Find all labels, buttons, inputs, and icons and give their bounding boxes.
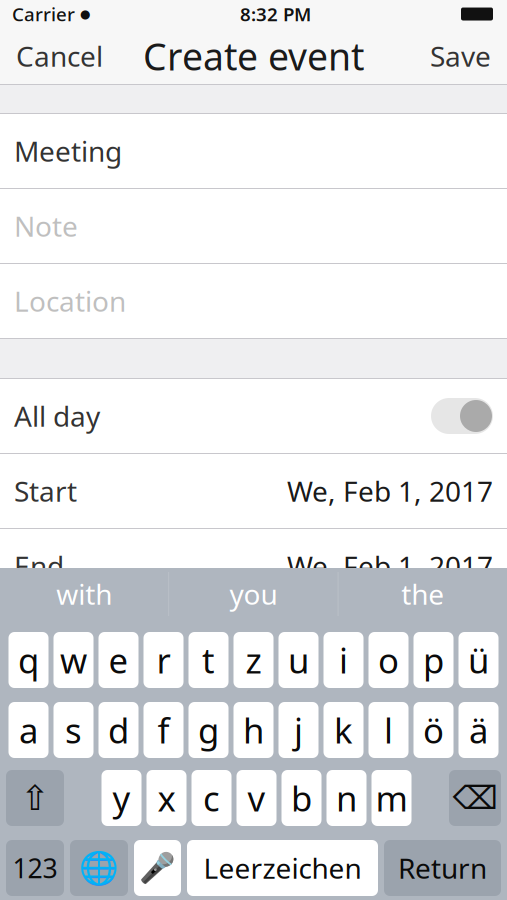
- staticText: f: [157, 707, 169, 753]
- button[interactable]: Next keyboard: [70, 840, 128, 896]
- button[interactable]: l: [368, 702, 408, 758]
- staticText: u: [288, 637, 309, 683]
- staticText: a: [19, 707, 38, 753]
- button[interactable]: with: [0, 568, 168, 620]
- button[interactable]: h: [233, 702, 273, 758]
- button[interactable]: Start: [0, 454, 507, 528]
- staticText: Return: [398, 849, 487, 887]
- staticText: o: [378, 637, 399, 683]
- staticText: 🌐: [79, 850, 119, 886]
- staticText: End: [14, 547, 64, 585]
- button[interactable]: 123: [6, 840, 64, 896]
- staticText: ●: [80, 7, 90, 21]
- button[interactable]: k: [323, 702, 363, 758]
- button[interactable]: e: [98, 632, 138, 688]
- button[interactable]: m: [371, 770, 411, 826]
- button[interactable]: All day: [0, 379, 507, 453]
- staticText: ü: [468, 637, 489, 683]
- staticText: v: [247, 775, 265, 821]
- staticText: ⌫: [452, 780, 497, 816]
- staticText: l: [384, 707, 393, 753]
- staticText: 🎤: [139, 851, 176, 885]
- button[interactable]: End: [0, 529, 507, 603]
- staticText: Meeting: [14, 132, 122, 170]
- staticText: j: [294, 707, 303, 753]
- staticText: with: [56, 575, 112, 613]
- staticText: ä: [469, 707, 488, 753]
- staticText: you: [229, 575, 277, 613]
- staticText: z: [245, 637, 261, 683]
- staticText: x: [157, 775, 175, 821]
- button[interactable]: a: [8, 702, 48, 758]
- staticText: s: [65, 707, 82, 753]
- staticText: We, Feb 1, 2017: [287, 472, 493, 510]
- staticText: p: [423, 637, 444, 683]
- button[interactable]: p: [413, 632, 453, 688]
- button[interactable]: Cancel: [0, 27, 119, 85]
- button[interactable]: Return: [384, 840, 501, 896]
- button[interactable]: the: [339, 568, 507, 620]
- button[interactable]: r: [143, 632, 183, 688]
- staticText: All day: [14, 397, 100, 435]
- button[interactable]: Meeting: [0, 114, 507, 188]
- button[interactable]: Shift: [6, 770, 64, 826]
- staticText: h: [243, 707, 264, 753]
- button[interactable]: n: [326, 770, 366, 826]
- button[interactable]: o: [368, 632, 408, 688]
- button[interactable]: i: [323, 632, 363, 688]
- staticText: k: [334, 707, 353, 753]
- staticText: t: [202, 637, 215, 683]
- button[interactable]: ö: [413, 702, 453, 758]
- staticText: Leerzeichen: [203, 849, 361, 887]
- button[interactable]: ä: [458, 702, 498, 758]
- button[interactable]: Leerzeichen: [187, 840, 378, 896]
- staticText: y: [112, 775, 130, 821]
- button[interactable]: f: [143, 702, 183, 758]
- staticText: e: [108, 637, 128, 683]
- staticText: g: [198, 707, 219, 753]
- staticText: q: [18, 637, 39, 683]
- staticText: Create event: [143, 31, 364, 81]
- button[interactable]: Save: [414, 27, 507, 85]
- button[interactable]: Note: [0, 189, 507, 263]
- button[interactable]: d: [98, 702, 138, 758]
- staticText: Cancel: [16, 37, 103, 75]
- staticText: ⇧: [20, 778, 49, 818]
- staticText: c: [203, 775, 220, 821]
- staticText: Location: [14, 282, 126, 320]
- button[interactable]: q: [8, 632, 48, 688]
- staticText: b: [291, 775, 312, 821]
- button[interactable]: j: [278, 702, 318, 758]
- button[interactable]: b: [281, 770, 321, 826]
- staticText: Start: [14, 472, 77, 510]
- button[interactable]: s: [53, 702, 93, 758]
- staticText: 8:32 PM: [240, 2, 311, 26]
- button[interactable]: Location: [0, 264, 507, 338]
- button[interactable]: z: [233, 632, 273, 688]
- button[interactable]: v: [236, 770, 276, 826]
- button[interactable]: you: [169, 568, 338, 620]
- button[interactable]: Dictate: [134, 840, 181, 896]
- staticText: Save: [430, 37, 491, 75]
- staticText: 123: [12, 850, 57, 886]
- staticText: ö: [423, 707, 444, 753]
- staticText: i: [339, 637, 348, 683]
- button[interactable]: x: [146, 770, 186, 826]
- button[interactable]: ü: [458, 632, 498, 688]
- staticText: Note: [14, 207, 78, 245]
- staticText: r: [156, 637, 170, 683]
- staticText: m: [375, 775, 407, 821]
- button[interactable]: c: [191, 770, 231, 826]
- button[interactable]: y: [101, 770, 141, 826]
- staticText: n: [336, 775, 357, 821]
- staticText: w: [60, 637, 87, 683]
- button[interactable]: u: [278, 632, 318, 688]
- staticText: the: [401, 575, 444, 613]
- staticText: d: [108, 707, 129, 753]
- button[interactable]: w: [53, 632, 93, 688]
- button[interactable]: g: [188, 702, 228, 758]
- button[interactable]: t: [188, 632, 228, 688]
- staticText: We, Feb 1, 2017: [287, 547, 493, 585]
- button[interactable]: Delete: [449, 770, 501, 826]
- staticText: Carrier: [12, 2, 75, 26]
